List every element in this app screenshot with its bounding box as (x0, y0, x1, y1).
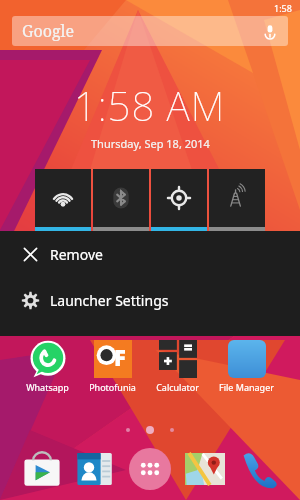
staticText: 1:58 AM (74, 78, 226, 132)
button[interactable]: All apps (129, 448, 171, 490)
staticText: Calculator (156, 381, 199, 393)
button[interactable]: Calculator (156, 340, 199, 393)
button[interactable]: Launcher Settings (0, 277, 300, 324)
staticText: Google (22, 20, 75, 42)
staticText: Photofunia (89, 381, 136, 393)
staticText: Launcher Settings (50, 291, 169, 310)
button[interactable]: Wi-Fi (35, 169, 91, 231)
button[interactable]: Bluetooth (93, 169, 149, 231)
button[interactable]: Remove (0, 231, 300, 277)
staticText: Remove (50, 245, 103, 264)
button[interactable]: Maps (185, 449, 225, 489)
staticText: Whatsapp (26, 381, 69, 393)
button[interactable]: Google (12, 16, 288, 46)
button[interactable]: Contacts (75, 449, 115, 489)
button[interactable]: Play Store (22, 449, 62, 489)
button[interactable]: Whatsapp (26, 340, 69, 393)
button[interactable]: Mobile data (209, 169, 265, 231)
staticText: File Manager (219, 381, 274, 393)
staticText: 1:58 (274, 2, 292, 14)
button[interactable]: Location (151, 169, 207, 231)
button[interactable]: F (89, 340, 136, 393)
button[interactable]: File Manager (219, 340, 274, 393)
staticText: Thursday, Sep 18, 2014 (91, 136, 210, 151)
button[interactable]: Phone (238, 449, 278, 489)
staticText: F (114, 342, 126, 372)
